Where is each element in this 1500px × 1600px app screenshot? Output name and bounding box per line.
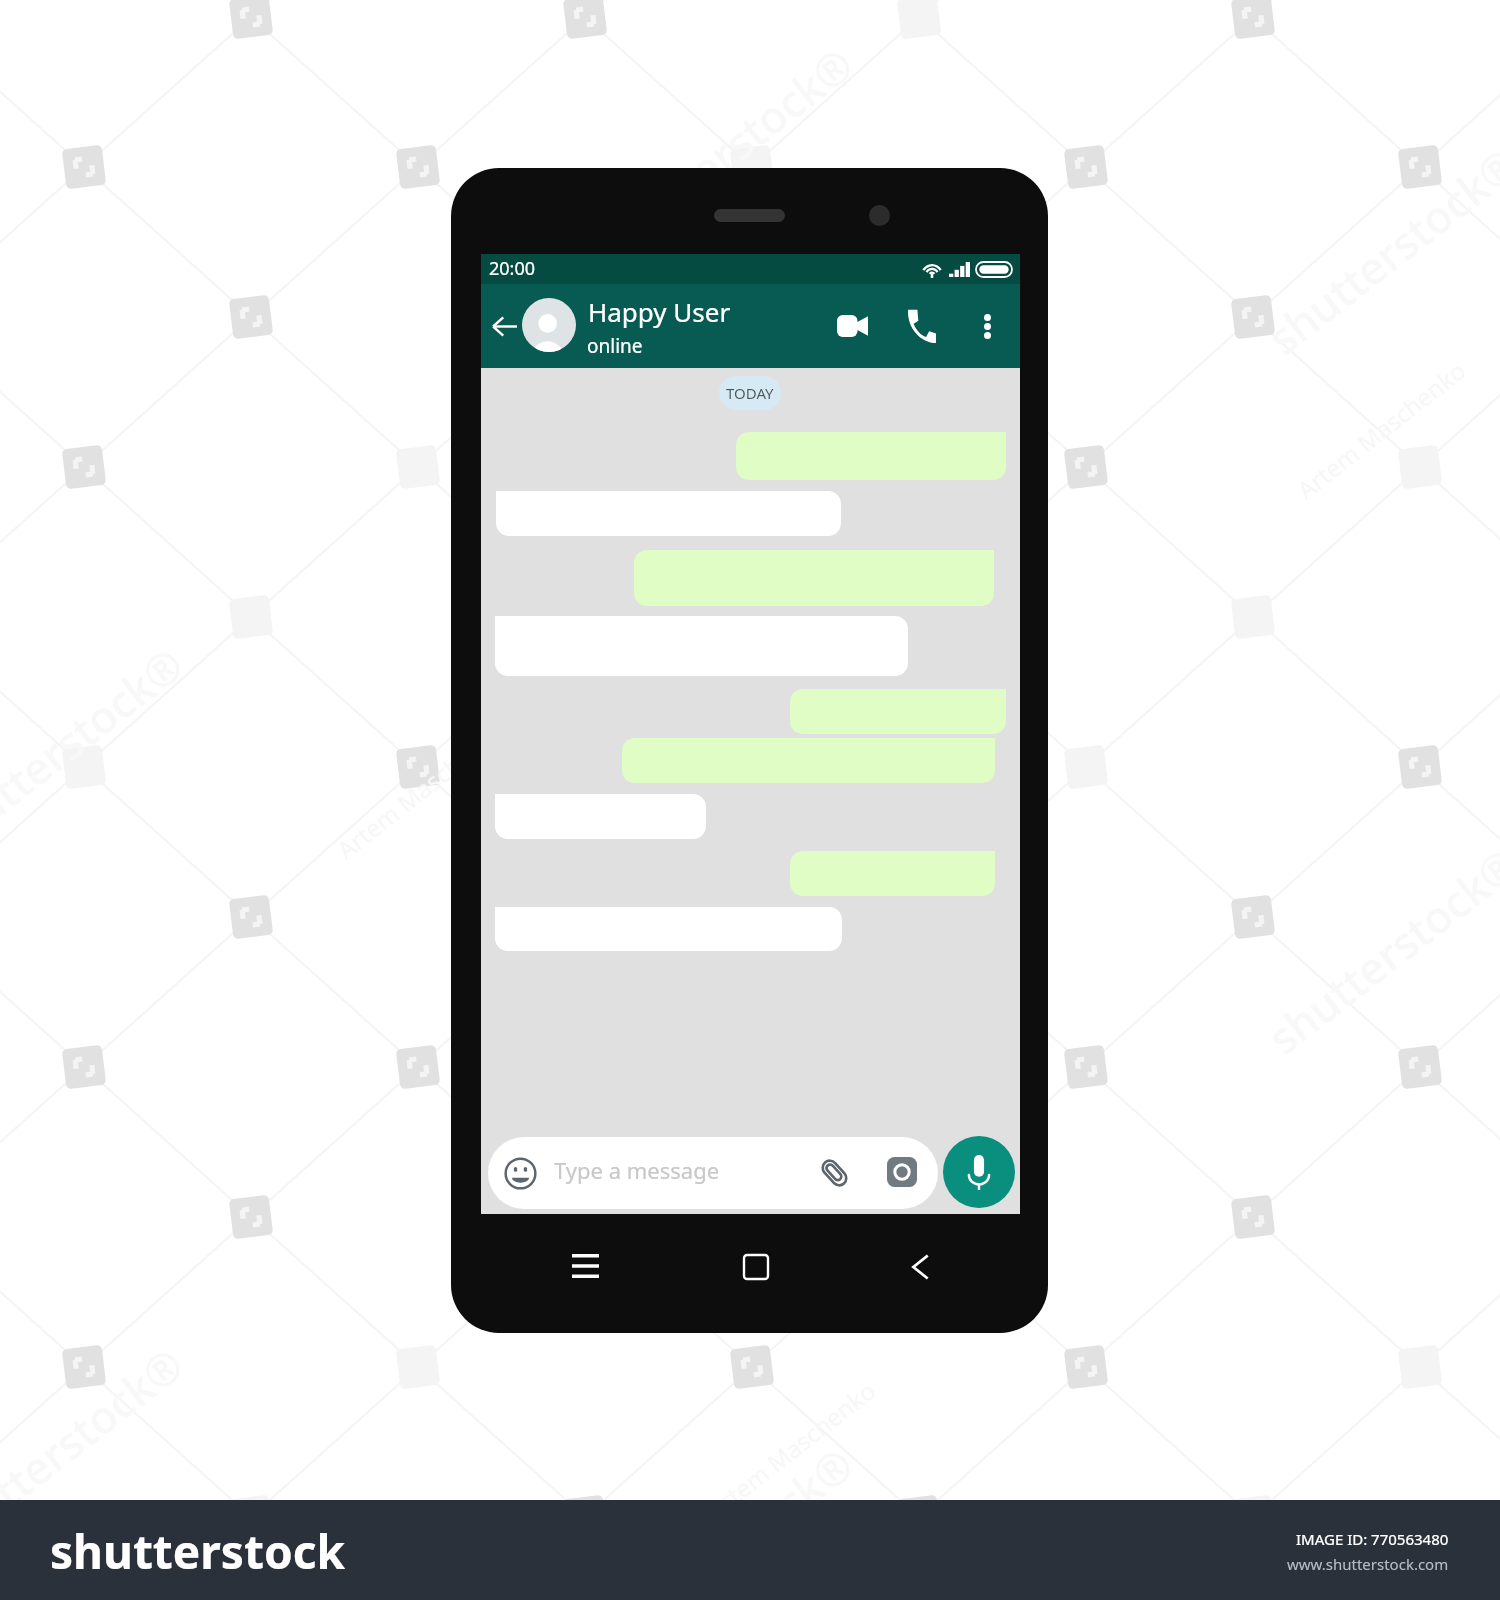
staticText: Artem Maschenko xyxy=(1290,354,1472,506)
staticText: shutterstock® xyxy=(0,1333,196,1567)
staticText: IMAGE ID: 770563480 xyxy=(1296,1529,1449,1549)
staticText: TODAY xyxy=(726,383,774,403)
button[interactable]: Profile photo xyxy=(522,298,576,352)
staticText: shutterstock® xyxy=(1255,833,1500,1067)
staticText: shutterstock® xyxy=(590,33,866,267)
button[interactable]: Record voice message xyxy=(943,1136,1015,1208)
button[interactable]: More options xyxy=(965,304,1009,348)
button[interactable]: Back xyxy=(897,1244,942,1289)
staticText: www.shutterstock.com xyxy=(1287,1554,1449,1574)
button[interactable]: Video call xyxy=(829,303,875,349)
button[interactable]: Happy User xyxy=(586,292,811,360)
button[interactable]: Camera xyxy=(878,1148,926,1196)
staticText: Type a message xyxy=(554,1155,720,1185)
staticText: shutterstock® xyxy=(590,733,866,967)
staticText: Happy User xyxy=(588,294,731,329)
button[interactable]: Received message xyxy=(495,794,706,839)
staticText: Artem Maschenko xyxy=(512,264,694,416)
button[interactable]: Attach file xyxy=(810,1148,859,1197)
staticText: Artem Maschenko xyxy=(700,1374,882,1526)
button[interactable]: TODAY xyxy=(719,376,781,410)
button[interactable]: Emoji xyxy=(488,1137,938,1209)
button[interactable]: Voice call xyxy=(897,301,943,347)
staticText: shutterstock xyxy=(50,1520,345,1583)
staticText: shutterstock® xyxy=(590,1433,866,1600)
staticText: Artem Maschenko xyxy=(330,714,512,866)
staticText: online xyxy=(587,333,643,359)
staticText: shutterstock® xyxy=(1255,133,1500,367)
button[interactable]: Recent apps xyxy=(563,1243,608,1288)
staticText: 20:00 xyxy=(489,256,536,281)
button[interactable]: Emoji xyxy=(496,1149,544,1197)
button[interactable]: Back xyxy=(482,304,526,348)
button[interactable]: Home xyxy=(733,1244,778,1289)
